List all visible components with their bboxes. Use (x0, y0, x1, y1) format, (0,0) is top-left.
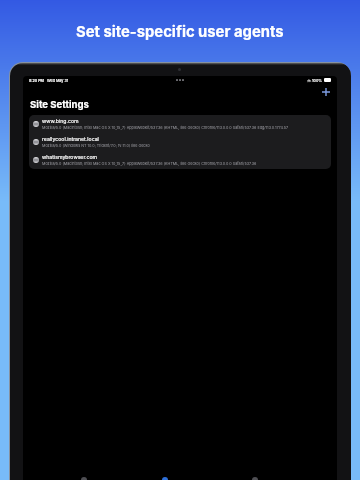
button[interactable]: Browser (142, 477, 188, 480)
staticText: whatismybrowser.com (42, 154, 98, 160)
staticText: Set site-specific user agents (76, 23, 284, 41)
staticText: Mozilla/5.0 (Macintosh; Intel Mac OS X 1… (42, 161, 257, 166)
staticText: Mozilla/5.0 (Macintosh; Intel Mac OS X 1… (42, 125, 289, 130)
staticText: 100% (312, 78, 322, 82)
button[interactable]: www.bing.com (29, 115, 331, 133)
staticText: www.bing.com (42, 118, 79, 124)
staticText: reallycool.intranet.local (42, 136, 99, 142)
staticText: 8:20 PM (29, 78, 44, 82)
staticText: Wed May 31 (47, 78, 69, 82)
button[interactable]: whatismybrowser.com (29, 151, 331, 169)
button[interactable]: Settings (232, 477, 278, 480)
button[interactable]: reallycool.intranet.local (29, 133, 331, 151)
staticText: Site Settings (30, 99, 89, 111)
button[interactable]: Add site (317, 83, 334, 100)
button[interactable]: Bookmarks (61, 477, 107, 480)
staticText: Mozilla/5.0 (Windows NT 10.0; Trident/7.… (42, 143, 150, 148)
